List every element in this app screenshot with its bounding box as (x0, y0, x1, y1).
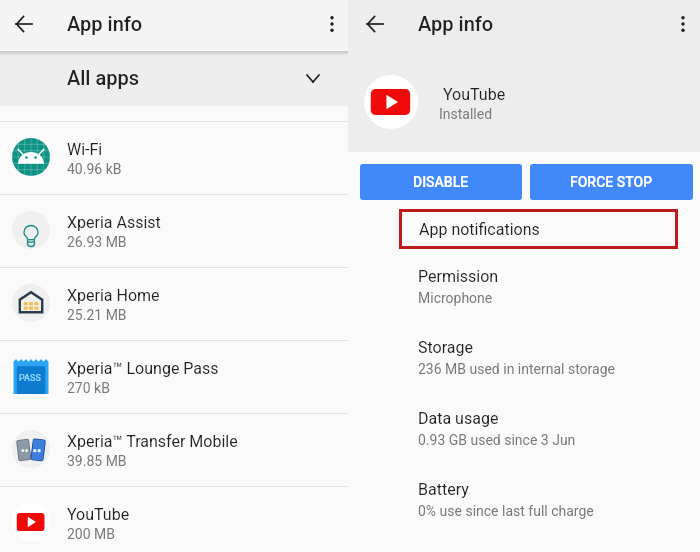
button[interactable]: Xperia Assist (0, 194, 348, 267)
staticText: DISABLE (413, 174, 469, 190)
staticText: Battery (418, 480, 469, 499)
button[interactable]: Wi-Fi (0, 121, 348, 194)
staticText: App info (418, 12, 494, 35)
button[interactable]: Xperia™ Transfer Mobile (0, 413, 348, 486)
button[interactable]: Battery (395, 480, 696, 542)
staticText: App info (67, 12, 143, 35)
button[interactable]: YouTube (0, 486, 348, 552)
staticText: 0% use since last full charge (418, 503, 594, 519)
button[interactable]: Xperia Home (0, 267, 348, 340)
staticText: Storage (418, 338, 473, 357)
button[interactable]: Back (5, 5, 42, 42)
staticText: Xperia Home (67, 286, 160, 305)
staticText: All apps (67, 66, 139, 89)
button[interactable]: More options (313, 5, 350, 42)
button[interactable]: More options (664, 5, 700, 42)
staticText: FORCE STOP (570, 174, 653, 190)
staticText: 236 MB used in internal storage (418, 361, 615, 377)
staticText: PASS (19, 373, 41, 384)
button[interactable]: All apps (0, 50, 348, 106)
button[interactable]: App notifications (399, 209, 678, 249)
staticText: 25.21 MB (67, 307, 127, 323)
staticText: Wi-Fi (67, 140, 103, 159)
staticText: Permission (418, 267, 499, 286)
staticText: 40.96 kB (67, 161, 122, 177)
staticText: Microphone (418, 290, 493, 306)
button[interactable]: Back (356, 5, 393, 42)
staticText: Data usage (418, 409, 499, 428)
staticText: 200 MB (67, 526, 116, 542)
staticText: Xperia Assist (67, 213, 161, 232)
staticText: 39.85 MB (67, 453, 127, 469)
staticText: Xperia™ Lounge Pass (67, 359, 219, 378)
staticText: Xperia™ Transfer Mobile (67, 432, 238, 451)
staticText: 26.93 MB (67, 234, 127, 250)
button[interactable]: FORCE STOP (530, 164, 693, 200)
button[interactable]: Expand (295, 60, 331, 96)
staticText: 270 kB (67, 380, 110, 396)
button[interactable]: Storage (395, 338, 696, 400)
button[interactable]: Permission (395, 267, 696, 329)
staticText: YouTube (67, 505, 130, 524)
staticText: 0.93 GB used since 3 Jun (418, 432, 576, 448)
button[interactable]: PASS (0, 340, 348, 413)
staticText: App notifications (419, 220, 540, 239)
staticText: Installed (439, 106, 493, 122)
button[interactable]: DISABLE (360, 164, 522, 200)
button[interactable]: Data usage (395, 409, 696, 471)
staticText: YouTube (443, 85, 506, 104)
